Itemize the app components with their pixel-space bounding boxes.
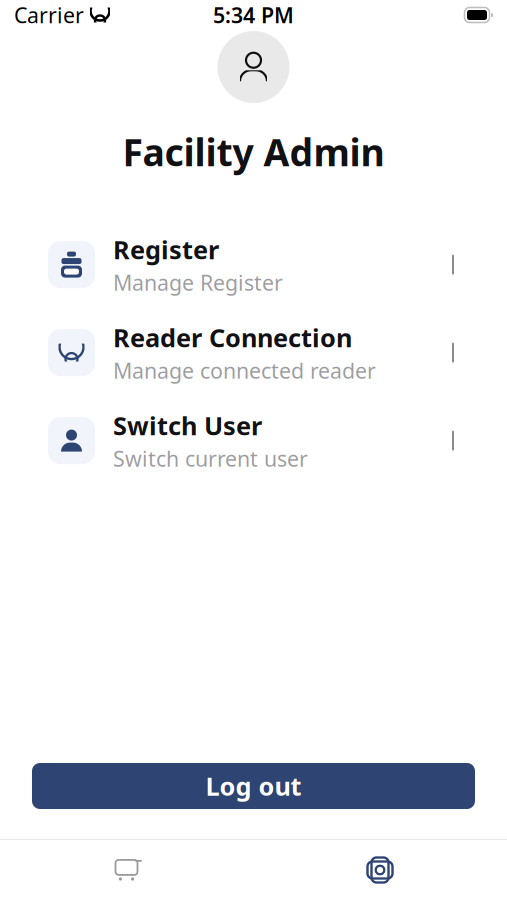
button[interactable]: Register (0, 221, 507, 309)
staticText: Log out (205, 769, 301, 803)
button[interactable]: Switch User (0, 397, 507, 485)
button[interactable]: Cart (0, 840, 253, 900)
button[interactable]: Log out (32, 763, 475, 809)
button[interactable]: Settings (253, 840, 507, 900)
staticText: Manage connected reader (113, 356, 376, 384)
staticText: Facility Admin (122, 127, 384, 177)
staticText: Reader Connection (113, 321, 352, 354)
staticText: 5:34 PM (213, 1, 294, 29)
staticText: Carrier (14, 1, 84, 29)
staticText: Register (113, 233, 219, 266)
staticText: Manage Register (113, 268, 283, 296)
staticText: Switch User (113, 409, 262, 442)
staticText: Switch current user (113, 444, 308, 472)
button[interactable]: Reader Connection (0, 309, 507, 397)
